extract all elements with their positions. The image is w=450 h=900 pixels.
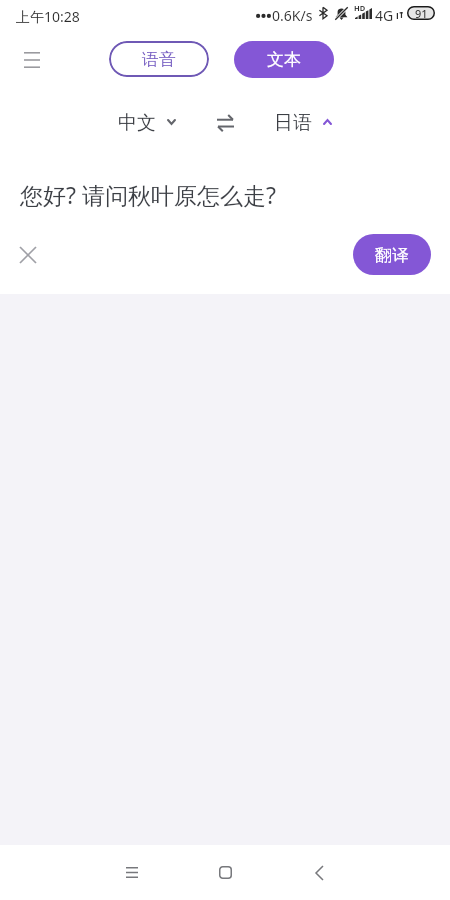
button[interactable]: Clear text (10, 237, 46, 273)
button[interactable]: 您好? 请问秋叶原怎么走? (0, 150, 450, 230)
staticText: 语音 (142, 49, 176, 70)
button[interactable]: Back (287, 845, 351, 900)
staticText: HD (354, 3, 366, 13)
staticText: 翻译 (375, 245, 409, 266)
button[interactable]: 日语 (268, 105, 338, 141)
staticText: 91 (415, 6, 428, 20)
staticText: 日语 (274, 111, 312, 135)
button[interactable]: 翻译 (353, 234, 431, 275)
button[interactable]: Home (193, 845, 257, 900)
staticText: 4G (375, 6, 394, 25)
staticText: 文本 (267, 49, 301, 70)
button[interactable]: 文本 (234, 41, 334, 78)
staticText: 上午10:28 (16, 7, 80, 26)
button[interactable]: Swap languages (210, 108, 240, 138)
staticText: 中文 (118, 111, 156, 135)
staticText: 您好? 请问秋叶原怎么走? (20, 179, 276, 210)
button[interactable]: Menu (14, 42, 50, 78)
button[interactable]: Recent apps (100, 845, 164, 900)
button[interactable]: 中文 (112, 105, 182, 141)
staticText: 0.6K/s (272, 6, 313, 25)
button[interactable]: 语音 (109, 41, 209, 77)
